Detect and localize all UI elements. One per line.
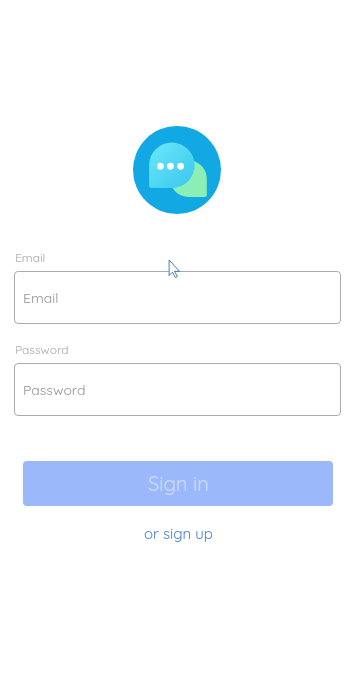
button[interactable]: Email <box>14 271 341 324</box>
staticText: Password <box>15 342 69 357</box>
staticText: Sign in <box>148 471 209 496</box>
staticText: or sign up <box>144 524 213 543</box>
staticText: Password <box>23 381 86 399</box>
button[interactable]: Password <box>14 363 341 416</box>
staticText: Email <box>15 250 46 265</box>
other: App logo <box>133 126 221 214</box>
button[interactable]: Sign in <box>23 461 333 506</box>
button[interactable]: or sign up <box>140 521 217 546</box>
staticText: Email <box>23 289 59 307</box>
